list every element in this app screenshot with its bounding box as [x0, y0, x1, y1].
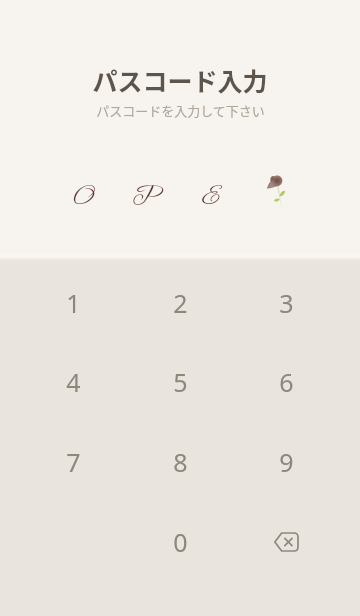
staticText: 6	[279, 365, 294, 399]
button[interactable]: Backspace	[246, 502, 326, 582]
staticText: 2	[173, 286, 188, 320]
staticText: パスコードを入力して下さい	[96, 101, 265, 120]
staticText: 5	[173, 365, 188, 399]
staticText: O	[73, 181, 94, 213]
button[interactable]: 9	[241, 422, 331, 502]
staticText: 1	[66, 286, 81, 320]
button[interactable]: 0	[135, 502, 225, 582]
button[interactable]: 4	[28, 342, 118, 422]
staticText: E	[202, 181, 220, 213]
staticText: P	[132, 181, 160, 213]
button[interactable]: 2	[135, 263, 225, 343]
staticText: 4	[66, 365, 81, 399]
button[interactable]: 8	[135, 422, 225, 502]
button[interactable]: 3	[241, 263, 331, 343]
staticText: 7	[66, 445, 81, 479]
button[interactable]: 5	[135, 342, 225, 422]
staticText: 3	[279, 286, 294, 320]
button[interactable]: 1	[28, 263, 118, 343]
staticText: パスコード入力	[92, 62, 268, 98]
button[interactable]: 7	[28, 422, 118, 502]
staticText: 0	[173, 525, 188, 559]
staticText: 9	[279, 445, 294, 479]
button[interactable]: 6	[241, 342, 331, 422]
staticText: 8	[173, 445, 188, 479]
